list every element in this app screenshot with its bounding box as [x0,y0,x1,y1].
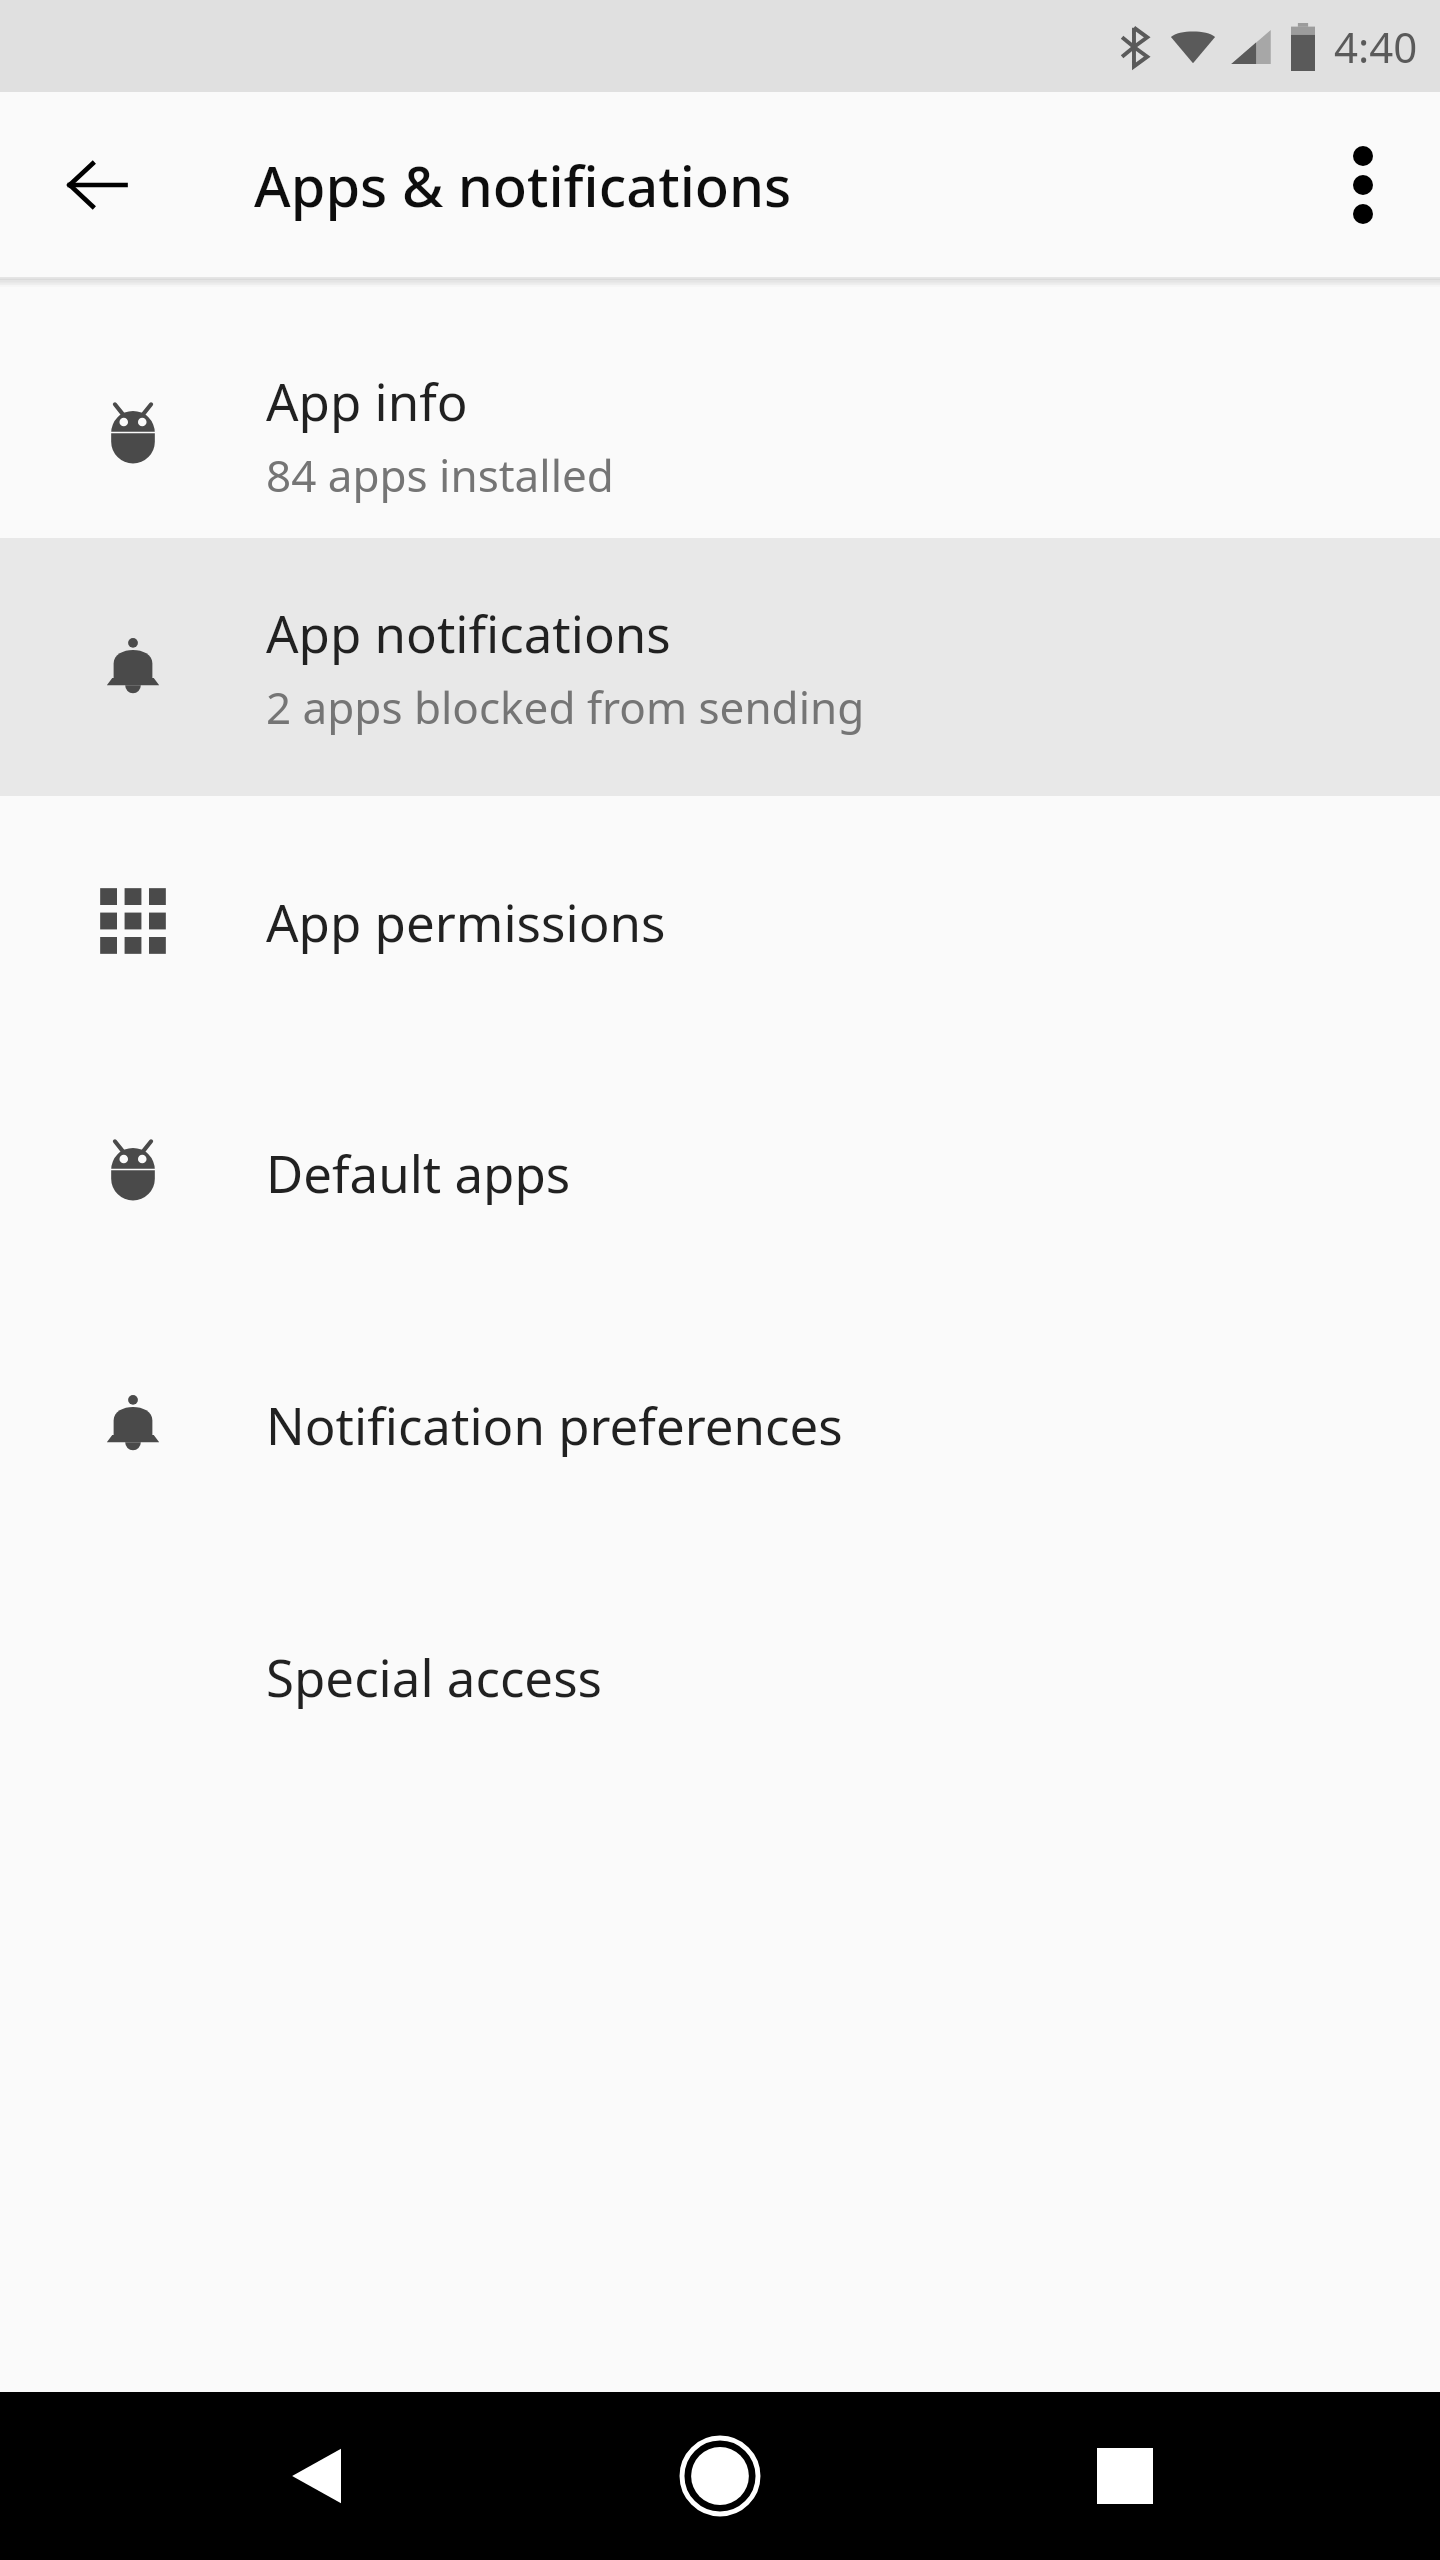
staticText: Notification preferences [266,1390,843,1459]
button[interactable]: Home [645,2401,795,2551]
button[interactable]: Notification preferences [0,1298,1440,1550]
staticText: 2 apps blocked from sending [266,677,865,737]
button[interactable]: More options [1308,130,1418,240]
button[interactable]: Recent apps [1050,2401,1200,2551]
button[interactable]: Default apps [0,1046,1440,1298]
staticText: 4:40 [1334,18,1418,75]
staticText: App info [266,366,468,435]
staticText: Apps & notifications [254,147,792,223]
staticText: Special access [266,1642,602,1711]
button[interactable]: App notifications [0,538,1440,796]
staticText: 84 apps installed [266,445,614,505]
button[interactable]: Navigate up [42,130,152,240]
button[interactable]: App permissions [0,796,1440,1046]
button[interactable]: App info [0,332,1440,538]
staticText: Default apps [266,1138,571,1207]
button[interactable]: Back [240,2401,390,2551]
staticText: App permissions [266,887,666,956]
staticText: App notifications [266,598,671,667]
button[interactable]: Special access [0,1550,1440,1802]
